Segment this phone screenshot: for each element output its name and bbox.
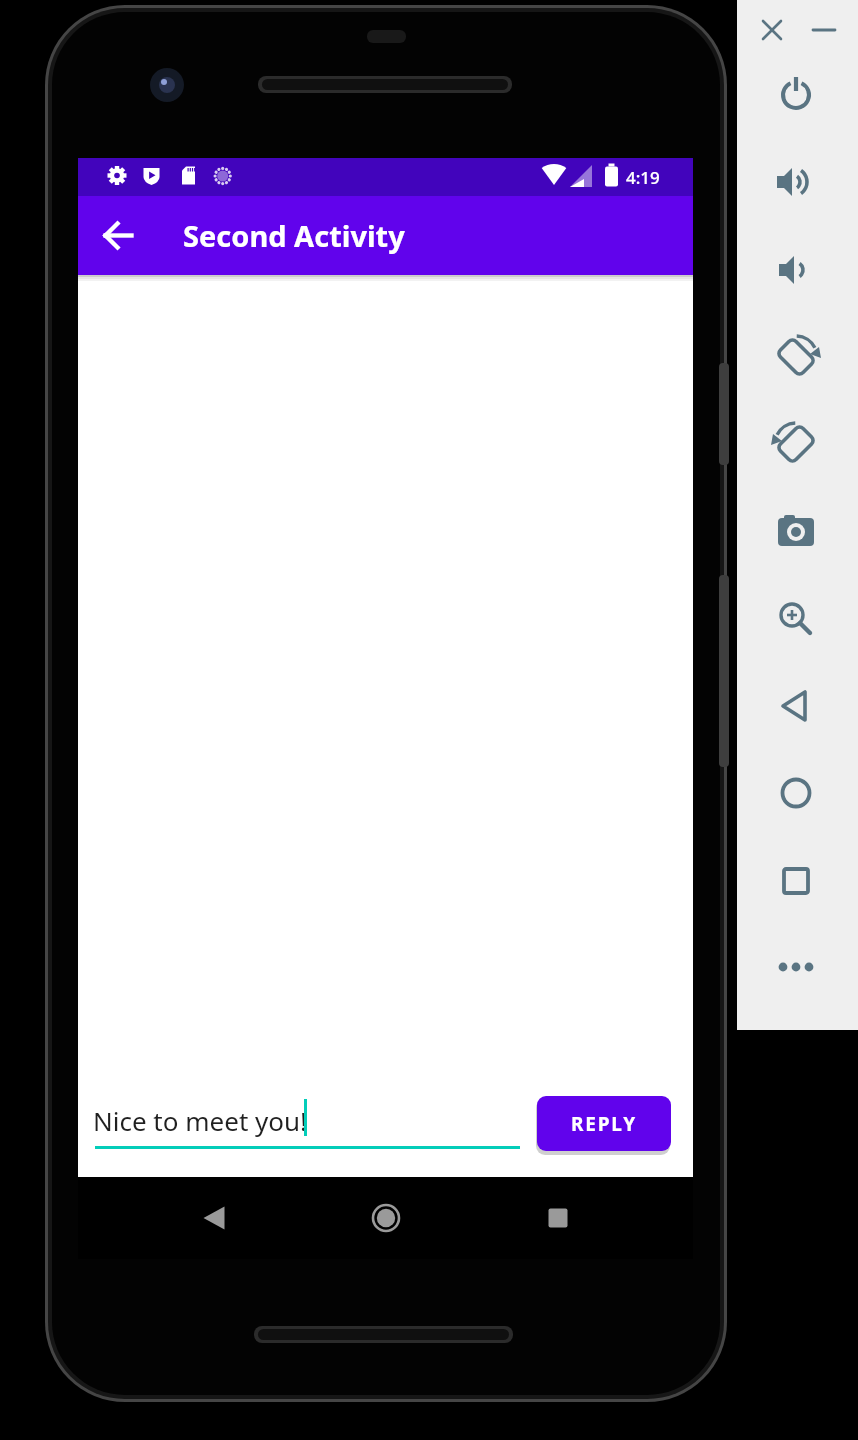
button[interactable] xyxy=(809,15,839,45)
staticText: Nice to meet you! xyxy=(93,1103,308,1138)
staticText: Second Activity xyxy=(183,216,405,255)
button[interactable] xyxy=(538,1198,578,1238)
button[interactable] xyxy=(757,15,787,45)
button[interactable] xyxy=(772,857,820,905)
button[interactable] xyxy=(772,333,820,381)
button[interactable] xyxy=(772,595,820,643)
button[interactable]: REPLY xyxy=(537,1096,671,1151)
button[interactable] xyxy=(91,208,146,263)
button[interactable] xyxy=(366,1198,406,1238)
button[interactable]: Nice to meet you! xyxy=(95,1096,537,1156)
staticText: REPLY xyxy=(571,1111,637,1137)
button[interactable] xyxy=(772,246,820,294)
button[interactable] xyxy=(772,943,820,991)
button[interactable] xyxy=(772,158,820,206)
button[interactable] xyxy=(772,769,820,817)
staticText: 4:19 xyxy=(626,166,660,189)
button[interactable] xyxy=(772,420,820,468)
button[interactable] xyxy=(772,682,820,730)
button[interactable] xyxy=(772,507,820,555)
button[interactable] xyxy=(772,71,820,119)
button[interactable] xyxy=(194,1198,234,1238)
